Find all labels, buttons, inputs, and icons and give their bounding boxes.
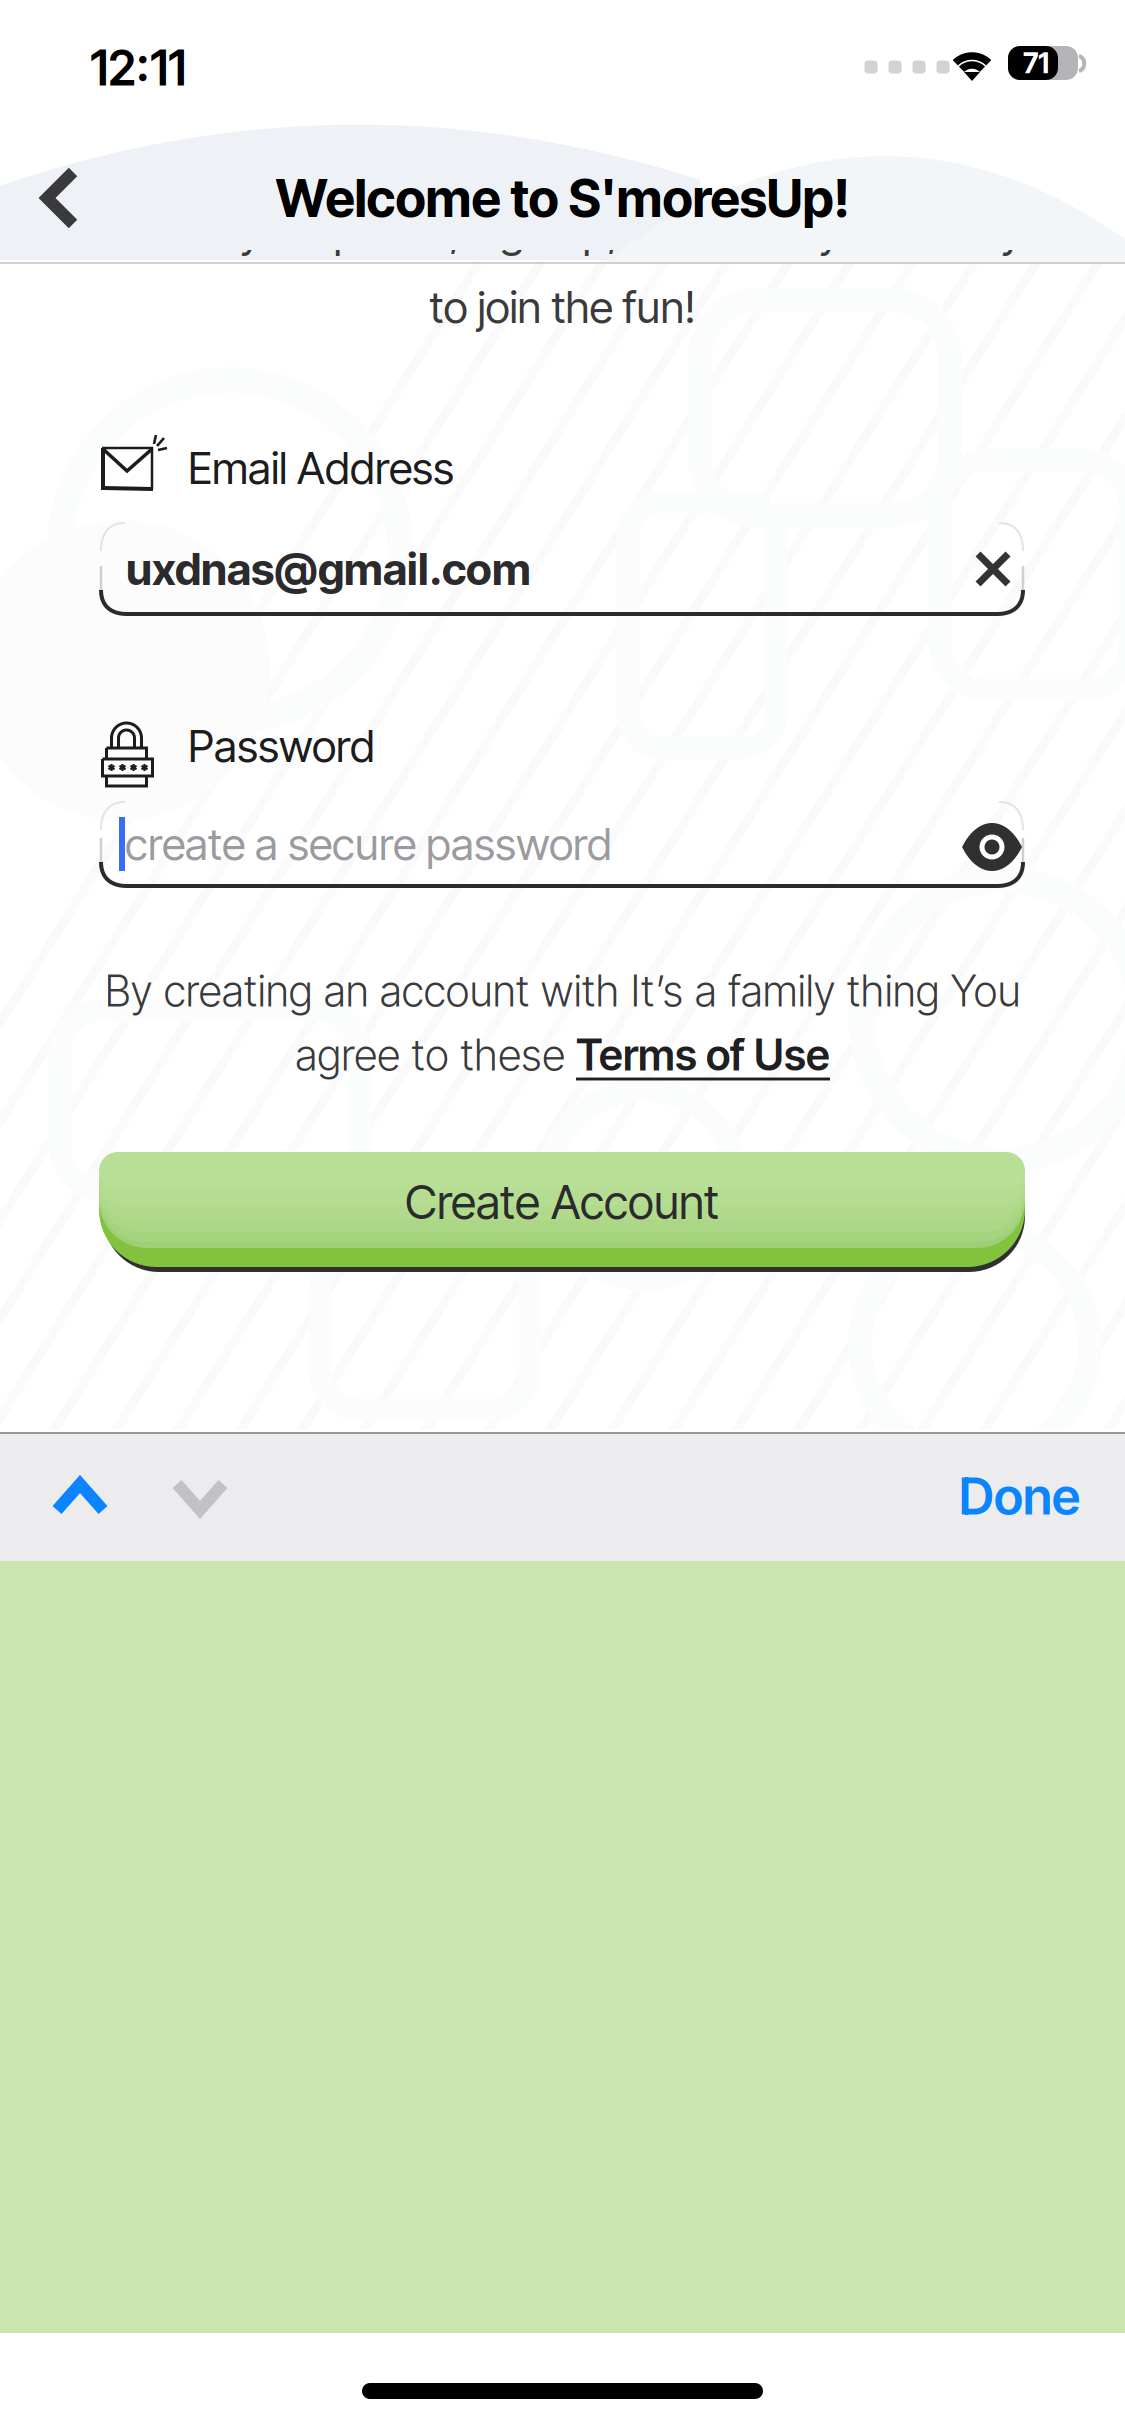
staticText: create a secure password [125, 817, 612, 871]
staticText: to join the fun! [429, 280, 695, 334]
staticText: Terms of Use [576, 1029, 830, 1081]
staticText: Email Address [188, 441, 454, 495]
staticText: 71 [1023, 46, 1049, 80]
button[interactable]: Next field [145, 1474, 255, 1520]
button[interactable]: Previous field [25, 1474, 135, 1520]
button[interactable]: Done [915, 1464, 1080, 1528]
staticText: Welcome to S'moresUp! [275, 166, 849, 229]
button[interactable]: Create Account [99, 1152, 1029, 1276]
button[interactable]: Back [14, 166, 106, 230]
staticText: Create your profile, sign up, and invite… [102, 204, 1022, 258]
staticText: uxdnas@gmail.com [126, 542, 531, 596]
staticText: Create Account [405, 1174, 719, 1230]
staticText: agree to these [295, 1029, 576, 1081]
button[interactable]: Terms of Use [576, 1029, 830, 1081]
staticText: Done [959, 1465, 1080, 1527]
staticText: Password [188, 719, 375, 773]
button[interactable]: Show password [961, 816, 1023, 878]
staticText: 12:11 [90, 39, 186, 97]
staticText: By creating an account with It’s a famil… [104, 965, 1020, 1017]
button[interactable]: Clear email [963, 539, 1023, 599]
